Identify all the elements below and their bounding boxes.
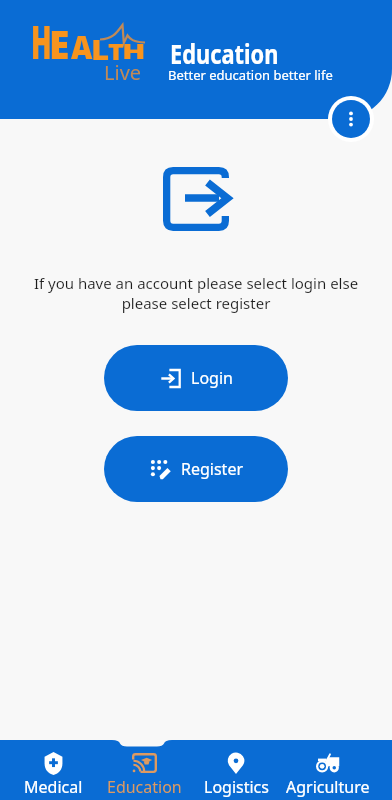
staticText: L: [91, 30, 109, 68]
staticText: A: [71, 26, 93, 69]
staticText: Login: [191, 367, 233, 389]
staticText: Logistics: [204, 776, 269, 798]
button[interactable]: More options: [332, 100, 370, 138]
staticText: Better education better life: [168, 66, 333, 84]
staticText: E: [49, 17, 70, 71]
staticText: Medical: [24, 776, 83, 798]
staticText: If you have an account please select log…: [26, 273, 366, 313]
staticText: Live: [104, 59, 142, 86]
staticText: Education: [107, 776, 182, 798]
staticText: H: [122, 36, 146, 66]
button[interactable]: Logistics: [190, 740, 282, 800]
button[interactable]: Education: [99, 740, 190, 800]
button[interactable]: Register: [104, 436, 288, 502]
staticText: Register: [181, 458, 244, 480]
button[interactable]: Login: [104, 345, 288, 411]
staticText: Education: [170, 36, 279, 71]
staticText: H: [31, 9, 52, 73]
button[interactable]: Agriculture: [282, 740, 374, 800]
button[interactable]: Medical: [8, 740, 99, 800]
staticText: Agriculture: [286, 776, 370, 798]
staticText: T: [108, 36, 124, 67]
